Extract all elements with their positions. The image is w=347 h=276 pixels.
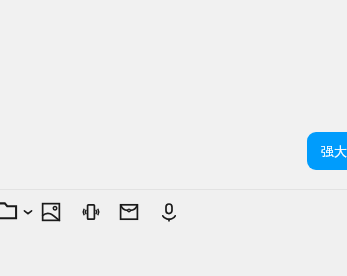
staticText: 强大的	[321, 143, 347, 159]
button[interactable]: Send image	[41, 202, 61, 222]
button[interactable]: Vibrate	[81, 202, 101, 222]
button[interactable]: Voice message	[159, 202, 179, 222]
button[interactable]: Send mail	[119, 202, 139, 222]
button[interactable]: 强大的	[307, 132, 347, 170]
button[interactable]: Choose folder	[0, 200, 34, 224]
